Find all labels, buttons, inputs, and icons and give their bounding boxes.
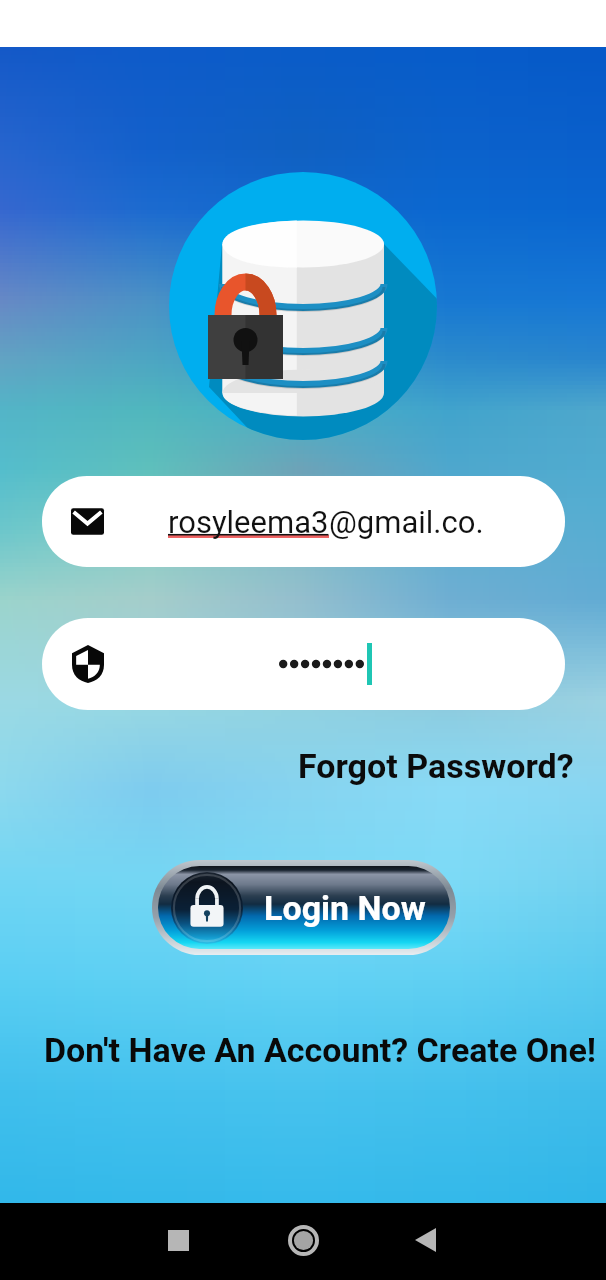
button[interactable]: Back: [395, 1210, 455, 1270]
staticText: Forgot Password?: [298, 746, 574, 786]
button[interactable]: Recents: [148, 1210, 208, 1270]
button[interactable]: Forgot Password?: [298, 746, 574, 786]
staticText: Login Now: [264, 888, 426, 928]
button[interactable]: Home: [273, 1210, 333, 1270]
button[interactable]: Login Now: [152, 860, 456, 955]
button[interactable]: Don't Have An Account? Create One!: [44, 1030, 597, 1070]
staticText: @gmail.co.: [329, 504, 484, 540]
button[interactable]: rosyleema3: [42, 476, 565, 567]
button[interactable]: [42, 618, 565, 710]
staticText: Don't Have An Account? Create One!: [44, 1030, 597, 1070]
staticText: rosyleema3: [168, 504, 329, 540]
